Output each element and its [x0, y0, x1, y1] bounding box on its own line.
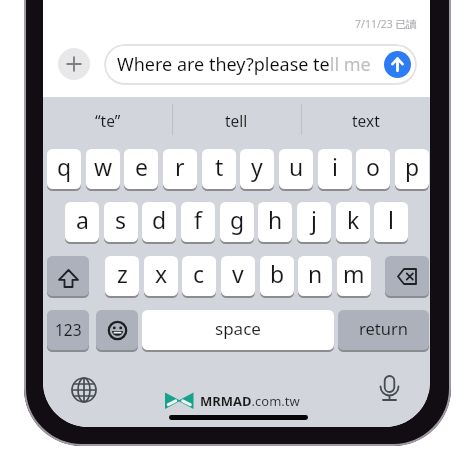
button[interactable] — [47, 256, 89, 296]
staticText: q — [57, 151, 72, 182]
staticText: s — [115, 204, 127, 235]
staticText: x — [155, 258, 168, 289]
staticText: a — [76, 204, 89, 235]
button[interactable]: p — [395, 149, 429, 189]
staticText: text — [352, 110, 380, 131]
staticText: w — [94, 151, 113, 182]
button[interactable]: r — [163, 149, 197, 189]
button[interactable]: a — [65, 202, 99, 242]
button[interactable]: c — [182, 256, 216, 296]
button[interactable]: w — [86, 149, 120, 189]
staticText: b — [270, 258, 285, 289]
button[interactable]: y — [240, 149, 274, 189]
staticText: o — [366, 151, 380, 182]
button[interactable]: o — [356, 149, 390, 189]
staticText: m — [343, 258, 365, 289]
staticText: j — [311, 204, 317, 235]
button[interactable]: m — [337, 256, 371, 296]
button[interactable]: 123 — [47, 310, 89, 350]
staticText: e — [135, 151, 148, 182]
staticText: f — [194, 204, 202, 235]
staticText: 123 — [55, 319, 82, 340]
staticText: u — [289, 151, 304, 182]
staticText: k — [347, 204, 360, 235]
button[interactable]: space — [142, 310, 334, 350]
button[interactable]: t — [202, 149, 236, 189]
staticText: “te” — [95, 110, 121, 131]
staticText: c — [193, 258, 205, 289]
staticText: t — [215, 151, 224, 182]
staticText: p — [405, 151, 420, 182]
button[interactable]: b — [260, 256, 294, 296]
button[interactable]: l — [374, 202, 408, 242]
button[interactable] — [58, 48, 90, 80]
button[interactable]: i — [318, 149, 352, 189]
staticText: Where are they?please tell me — [117, 52, 371, 77]
staticText: g — [230, 204, 245, 235]
button[interactable]: MRMAD.com.tw — [165, 390, 355, 410]
button[interactable] — [375, 375, 404, 404]
staticText: d — [152, 204, 167, 235]
staticText: z — [117, 258, 128, 289]
staticText: i — [332, 151, 338, 182]
button[interactable]: Where are they?please tell me — [104, 44, 417, 85]
staticText: v — [232, 258, 244, 289]
button[interactable] — [385, 256, 429, 296]
staticText: r — [175, 151, 185, 182]
button[interactable]: k — [336, 202, 370, 242]
button[interactable]: v — [221, 256, 255, 296]
button[interactable]: j — [297, 202, 331, 242]
staticText: 7/11/23 已讀 — [355, 17, 417, 31]
button[interactable]: f — [181, 202, 215, 242]
button[interactable]: s — [104, 202, 138, 242]
button[interactable] — [384, 51, 411, 78]
button[interactable]: tell — [172, 97, 301, 144]
staticText: l — [388, 204, 394, 235]
button[interactable]: z — [105, 256, 139, 296]
button[interactable]: d — [142, 202, 176, 242]
button[interactable]: u — [279, 149, 313, 189]
button[interactable]: return — [338, 310, 429, 350]
button[interactable]: g — [220, 202, 254, 242]
button[interactable]: text — [301, 97, 430, 144]
button[interactable]: “te” — [43, 97, 172, 144]
staticText: MRMAD.com.tw — [200, 392, 300, 410]
staticText: n — [308, 258, 323, 289]
staticText: space — [215, 317, 261, 340]
button[interactable] — [96, 310, 138, 350]
staticText: y — [251, 151, 263, 182]
button[interactable]: x — [144, 256, 178, 296]
button[interactable]: n — [298, 256, 332, 296]
button[interactable] — [71, 377, 97, 403]
button[interactable]: h — [258, 202, 292, 242]
staticText: h — [268, 204, 283, 235]
button[interactable]: e — [124, 149, 158, 189]
button[interactable]: q — [47, 149, 81, 189]
staticText: return — [359, 317, 408, 339]
staticText: tell — [225, 110, 248, 131]
